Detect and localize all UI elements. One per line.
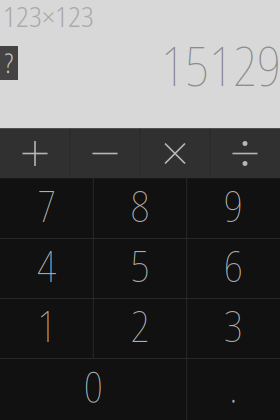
button[interactable]: Add bbox=[0, 128, 70, 178]
button[interactable]: 3 bbox=[187, 298, 280, 358]
button[interactable]: 9 bbox=[187, 178, 280, 238]
staticText: 15129 bbox=[161, 29, 280, 102]
staticText: 1 bbox=[37, 296, 56, 354]
staticText: 6 bbox=[224, 236, 243, 294]
button[interactable]: 6 bbox=[187, 238, 280, 298]
button[interactable]: Help bbox=[0, 46, 18, 80]
staticText: 2 bbox=[130, 296, 149, 354]
staticText: ? bbox=[4, 45, 13, 81]
button[interactable]: 1 bbox=[0, 298, 93, 358]
button[interactable]: Subtract bbox=[70, 128, 140, 178]
button[interactable]: . bbox=[187, 358, 280, 420]
staticText: 8 bbox=[130, 176, 149, 234]
button[interactable]: 5 bbox=[93, 238, 187, 298]
button[interactable]: 2 bbox=[93, 298, 187, 358]
staticText: . bbox=[229, 357, 237, 415]
staticText: 123×123 bbox=[3, 0, 94, 35]
button[interactable]: Multiply bbox=[140, 128, 210, 178]
staticText: 5 bbox=[130, 236, 149, 294]
button[interactable]: Divide bbox=[210, 128, 280, 178]
staticText: 7 bbox=[37, 176, 56, 234]
staticText: 0 bbox=[84, 357, 103, 415]
staticText: 4 bbox=[37, 236, 56, 294]
staticText: 9 bbox=[224, 176, 243, 234]
button[interactable]: 4 bbox=[0, 238, 93, 298]
staticText: 3 bbox=[224, 296, 243, 354]
button[interactable]: 8 bbox=[93, 178, 187, 238]
button[interactable]: 0 bbox=[0, 358, 187, 420]
button[interactable]: 7 bbox=[0, 178, 93, 238]
